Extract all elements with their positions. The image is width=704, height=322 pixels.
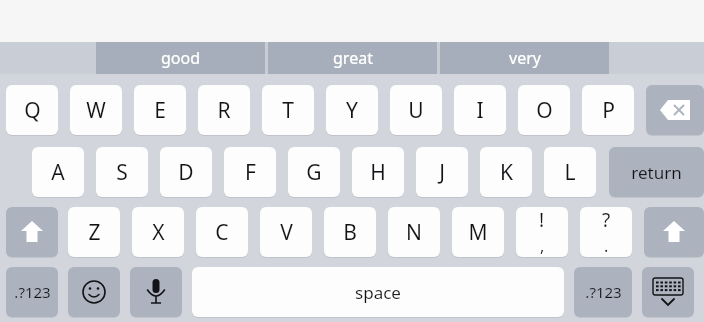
staticText: Q — [24, 96, 41, 125]
staticText: L — [564, 158, 576, 187]
button[interactable]: P — [582, 85, 634, 135]
button[interactable]: E — [134, 85, 186, 135]
button[interactable]: I — [454, 85, 506, 135]
button[interactable]: Dictation — [130, 267, 182, 317]
other: Shift — [644, 207, 704, 257]
staticText: Z — [88, 218, 101, 247]
staticText: ? — [602, 207, 611, 233]
button[interactable]: .?123 — [6, 267, 58, 317]
button[interactable]: S — [96, 147, 148, 197]
button[interactable]: C — [196, 207, 248, 257]
staticText: O — [536, 96, 553, 125]
staticText: P — [602, 96, 615, 125]
staticText: , — [540, 235, 545, 257]
staticText: return — [631, 161, 682, 184]
staticText: F — [245, 158, 256, 187]
staticText: R — [217, 96, 231, 125]
button[interactable]: X — [132, 207, 184, 257]
button[interactable]: great — [268, 42, 437, 74]
staticText: U — [408, 96, 424, 125]
button[interactable]: L — [544, 147, 596, 197]
button[interactable]: M — [452, 207, 504, 257]
button[interactable]: B — [324, 207, 376, 257]
staticText: M — [468, 218, 488, 247]
staticText: V — [280, 218, 293, 247]
button[interactable]: F — [224, 147, 276, 197]
staticText: space — [355, 281, 401, 304]
staticText: Y — [346, 96, 358, 125]
button[interactable]: K — [480, 147, 532, 197]
staticText: G — [306, 158, 322, 187]
staticText: .?123 — [585, 282, 622, 302]
other: Shift — [6, 207, 58, 257]
button[interactable]: Q — [6, 85, 58, 135]
button[interactable]: R — [198, 85, 250, 135]
other: Backspace — [646, 85, 704, 135]
button[interactable]: H — [352, 147, 404, 197]
staticText: great — [333, 47, 373, 69]
button[interactable]: ! — [516, 207, 568, 257]
button[interactable]: N — [388, 207, 440, 257]
button[interactable]: space — [192, 267, 564, 317]
button[interactable]: V — [260, 207, 312, 257]
staticText: D — [178, 158, 194, 187]
button[interactable]: T — [262, 85, 314, 135]
button[interactable]: Backspace — [646, 85, 704, 135]
other: Hide keyboard — [642, 267, 694, 317]
staticText: .?123 — [14, 282, 51, 302]
button[interactable]: Shift — [644, 207, 704, 257]
button[interactable]: Shift — [6, 207, 58, 257]
other: Emoji — [68, 267, 120, 317]
staticText: E — [154, 96, 166, 125]
staticText: A — [51, 158, 65, 187]
button[interactable]: return — [609, 147, 704, 197]
other: Dictation — [130, 267, 182, 317]
staticText: T — [282, 96, 294, 125]
staticText: I — [476, 96, 484, 125]
button[interactable]: Y — [326, 85, 378, 135]
staticText: C — [215, 218, 229, 247]
button[interactable]: J — [416, 147, 468, 197]
staticText: X — [152, 218, 165, 247]
staticText: W — [86, 96, 106, 125]
button[interactable]: W — [70, 85, 122, 135]
staticText: very — [509, 47, 541, 69]
staticText: K — [500, 158, 513, 187]
staticText: S — [116, 158, 128, 187]
button[interactable]: O — [518, 85, 570, 135]
button[interactable]: A — [32, 147, 84, 197]
button[interactable]: Emoji — [68, 267, 120, 317]
button[interactable]: good — [96, 42, 265, 74]
staticText: good — [161, 47, 201, 69]
button[interactable]: D — [160, 147, 212, 197]
staticText: B — [343, 218, 357, 247]
staticText: J — [439, 158, 445, 187]
button[interactable]: .?123 — [574, 267, 632, 317]
button[interactable]: U — [390, 85, 442, 135]
button[interactable]: very — [440, 42, 609, 74]
staticText: N — [406, 218, 422, 247]
staticText: H — [370, 158, 386, 187]
button[interactable]: G — [288, 147, 340, 197]
staticText: . — [604, 235, 609, 257]
button[interactable]: Hide keyboard — [642, 267, 694, 317]
button[interactable]: ? — [580, 207, 632, 257]
staticText: ! — [539, 207, 545, 233]
button[interactable]: Z — [68, 207, 120, 257]
